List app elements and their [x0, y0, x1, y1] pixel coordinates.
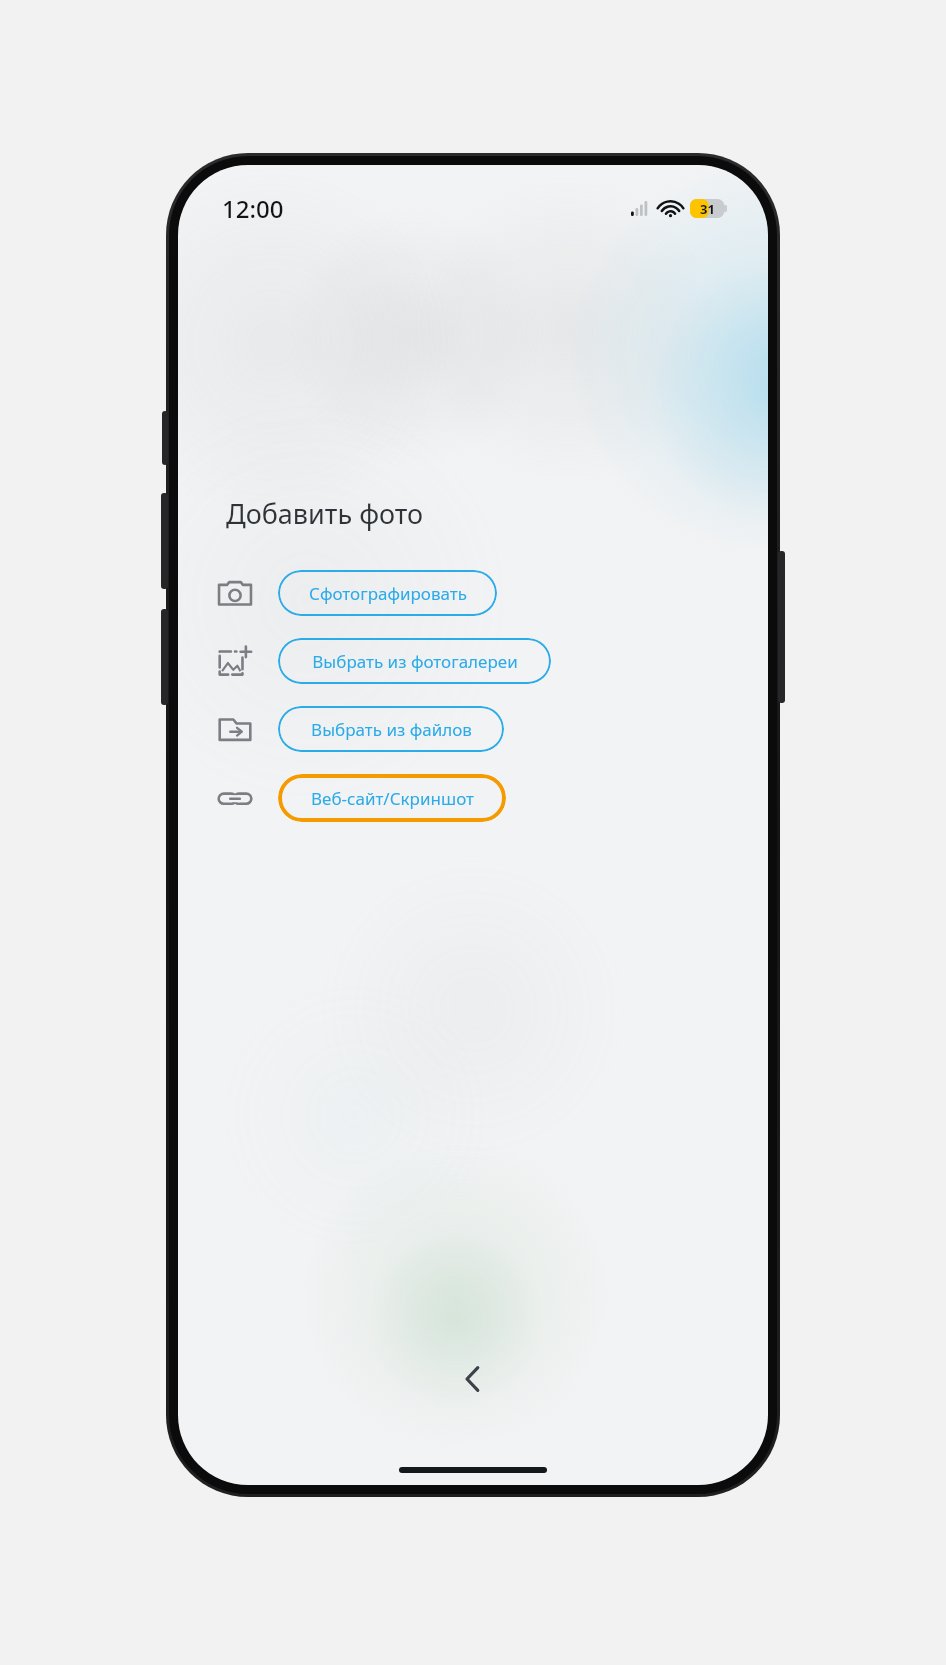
button[interactable]: Выбрать из файлов — [278, 706, 504, 752]
button[interactable]: Выбрать из фотогалереи — [278, 638, 551, 684]
staticText: Добавить фото — [226, 495, 424, 532]
button[interactable]: Gallery — [212, 638, 258, 684]
button[interactable]: Link — [212, 775, 258, 821]
button[interactable]: Camera — [212, 570, 258, 616]
button[interactable]: Back — [445, 1351, 501, 1407]
button[interactable]: Веб-сайт/Скриншот — [278, 774, 506, 822]
button[interactable]: Files — [212, 706, 258, 752]
staticText: Выбрать из фотогалереи — [312, 650, 518, 673]
staticText: Веб-сайт/Скриншот — [311, 787, 474, 810]
staticText: Сфотографировать — [309, 582, 467, 605]
button[interactable]: Сфотографировать — [278, 570, 497, 616]
staticText: 31 — [700, 200, 715, 218]
staticText: Выбрать из файлов — [311, 718, 472, 741]
staticText: 12:00 — [222, 192, 284, 225]
